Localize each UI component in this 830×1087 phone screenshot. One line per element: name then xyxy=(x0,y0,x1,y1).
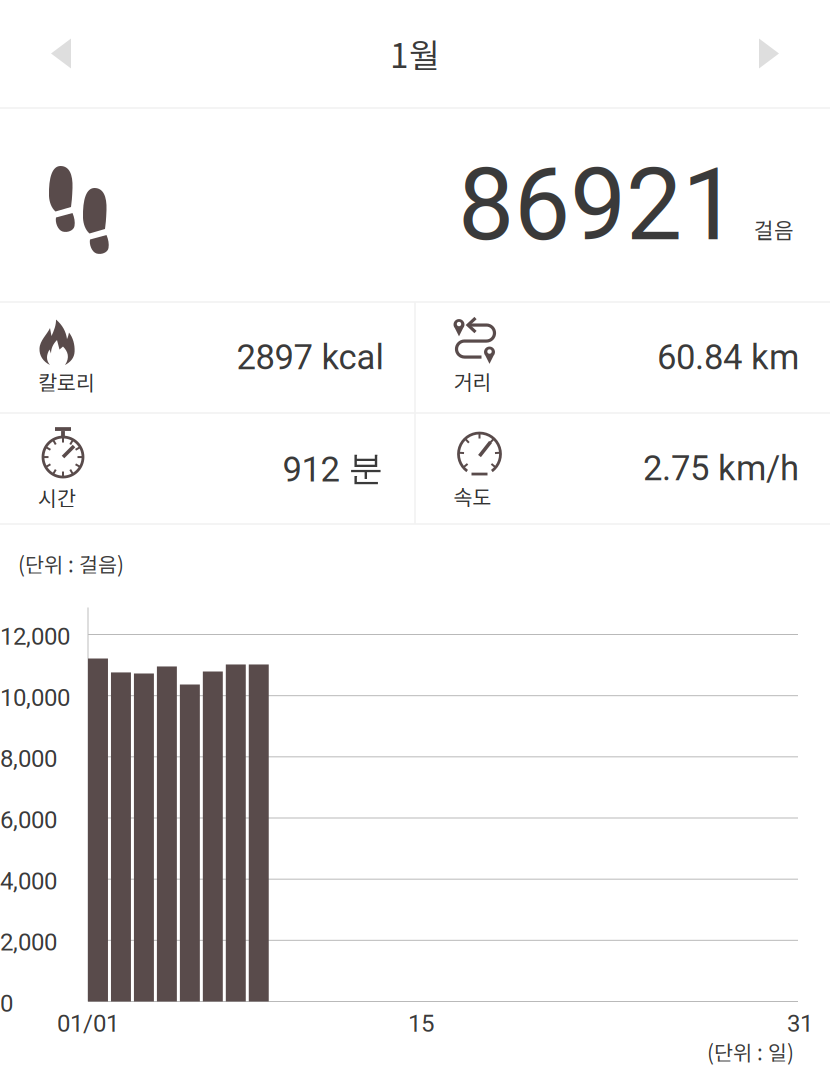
button[interactable]: Next month xyxy=(728,10,810,96)
staticText: 0 xyxy=(0,989,13,1018)
button[interactable]: 시간 xyxy=(0,413,414,523)
staticText: 시간 xyxy=(38,482,76,512)
staticText: 10,000 xyxy=(0,684,70,712)
staticText: 2,000 xyxy=(0,928,57,956)
staticText: 거리 xyxy=(453,366,491,396)
button[interactable]: 속도 xyxy=(415,413,830,523)
staticText: 2.75 km/h xyxy=(643,448,799,489)
button[interactable]: 거리 xyxy=(415,302,830,412)
staticText: 12,000 xyxy=(0,622,70,651)
staticText: 걸음 xyxy=(754,214,794,244)
staticText: 6,000 xyxy=(0,806,57,834)
button[interactable]: 칼로리 xyxy=(0,302,414,412)
staticText: 4,000 xyxy=(0,867,57,895)
staticText: 속도 xyxy=(453,481,491,511)
staticText: 01/01 xyxy=(57,1009,119,1038)
staticText: (단위 : 일) xyxy=(707,1036,794,1066)
staticText: 912 분 xyxy=(282,447,383,490)
staticText: 86921 xyxy=(458,146,738,264)
staticText: 8,000 xyxy=(0,745,57,773)
staticText: 1월 xyxy=(390,29,440,78)
staticText: 칼로리 xyxy=(38,366,95,396)
staticText: 2897 kcal xyxy=(236,337,383,378)
staticText: 60.84 km xyxy=(657,337,799,378)
staticText: (단위 : 걸음) xyxy=(18,548,124,578)
button[interactable]: Previous month xyxy=(20,10,102,96)
staticText: 31 xyxy=(787,1009,813,1038)
staticText: 15 xyxy=(408,1009,434,1038)
